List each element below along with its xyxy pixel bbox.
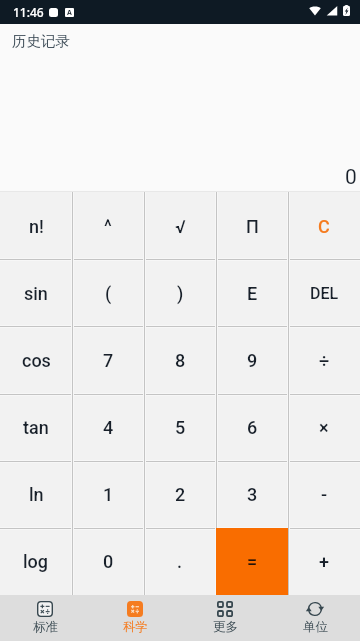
- staticText: 9: [247, 350, 258, 371]
- staticText: ): [177, 283, 184, 304]
- staticText: 更多: [213, 619, 238, 635]
- staticText: 0: [345, 165, 357, 190]
- button[interactable]: -: [288, 461, 360, 528]
- button[interactable]: 6: [216, 394, 288, 461]
- staticText: Π: [246, 216, 259, 237]
- staticText: log: [23, 551, 49, 572]
- staticText: -: [321, 484, 328, 505]
- button[interactable]: C: [288, 192, 360, 260]
- staticText: 6: [247, 417, 258, 438]
- staticText: 标准: [33, 619, 58, 635]
- staticText: 1: [103, 484, 114, 505]
- button[interactable]: √: [144, 192, 216, 260]
- staticText: sin: [24, 283, 48, 304]
- button[interactable]: ^: [72, 192, 144, 260]
- button[interactable]: .: [144, 528, 216, 595]
- staticText: 8: [175, 350, 186, 371]
- staticText: ÷: [319, 350, 330, 371]
- button[interactable]: ÷: [288, 327, 360, 394]
- button[interactable]: (: [72, 260, 144, 327]
- button[interactable]: 4: [72, 394, 144, 461]
- button[interactable]: E: [216, 260, 288, 327]
- button[interactable]: ): [144, 260, 216, 327]
- button[interactable]: 1: [72, 461, 144, 528]
- staticText: 科学: [123, 619, 148, 635]
- button[interactable]: Π: [216, 192, 288, 260]
- button[interactable]: =: [216, 528, 288, 595]
- button[interactable]: 7: [72, 327, 144, 394]
- staticText: n!: [29, 216, 44, 237]
- staticText: =: [247, 551, 258, 572]
- button[interactable]: ln: [0, 461, 72, 528]
- staticText: E: [247, 283, 258, 304]
- staticText: tan: [23, 417, 49, 438]
- staticText: cos: [22, 350, 51, 371]
- button[interactable]: 3: [216, 461, 288, 528]
- button[interactable]: 9: [216, 327, 288, 394]
- staticText: (: [105, 283, 112, 304]
- button[interactable]: 科学: [90, 595, 180, 641]
- staticText: C: [318, 216, 330, 237]
- button[interactable]: ×: [288, 394, 360, 461]
- staticText: 11:46: [13, 4, 44, 20]
- staticText: 0: [103, 551, 114, 572]
- staticText: 4: [103, 417, 114, 438]
- button[interactable]: 标准: [0, 595, 90, 641]
- staticText: ^: [104, 216, 112, 237]
- staticText: 7: [103, 350, 114, 371]
- staticText: 5: [175, 417, 186, 438]
- button[interactable]: DEL: [288, 260, 360, 327]
- staticText: +: [319, 551, 329, 572]
- staticText: 2: [175, 484, 186, 505]
- button[interactable]: 更多: [180, 595, 270, 641]
- staticText: .: [177, 551, 183, 572]
- staticText: A: [67, 8, 72, 17]
- button[interactable]: tan: [0, 394, 72, 461]
- button[interactable]: cos: [0, 327, 72, 394]
- staticText: 3: [247, 484, 258, 505]
- button[interactable]: 2: [144, 461, 216, 528]
- button[interactable]: 5: [144, 394, 216, 461]
- staticText: ln: [29, 484, 44, 505]
- button[interactable]: 8: [144, 327, 216, 394]
- button[interactable]: 0: [72, 528, 144, 595]
- button[interactable]: 单位: [270, 595, 360, 641]
- button[interactable]: sin: [0, 260, 72, 327]
- button[interactable]: =: [216, 528, 288, 595]
- staticText: √: [175, 216, 186, 237]
- staticText: =: [247, 551, 258, 572]
- button[interactable]: +: [288, 528, 360, 595]
- button[interactable]: 历史记录: [0, 24, 360, 65]
- button[interactable]: n!: [0, 192, 72, 260]
- staticText: 历史记录: [12, 32, 70, 50]
- staticText: DEL: [310, 284, 339, 303]
- staticText: 单位: [303, 619, 328, 635]
- staticText: ×: [319, 417, 329, 438]
- button[interactable]: log: [0, 528, 72, 595]
